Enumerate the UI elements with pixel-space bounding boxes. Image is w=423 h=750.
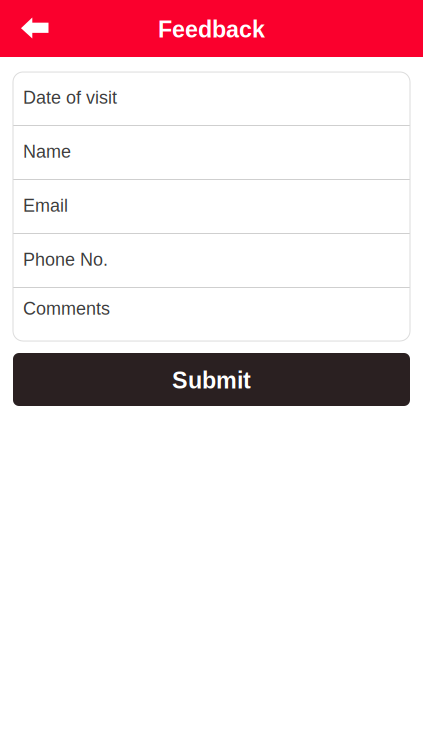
button[interactable]: Submit bbox=[13, 353, 410, 406]
button[interactable]: Comments bbox=[13, 288, 410, 341]
button[interactable]: Name bbox=[13, 126, 410, 180]
staticText: Date of visit bbox=[23, 87, 117, 107]
button[interactable]: Phone No. bbox=[13, 234, 410, 288]
staticText: Submit bbox=[172, 367, 251, 394]
staticText: Name bbox=[23, 141, 71, 161]
staticText: Feedback bbox=[158, 16, 265, 43]
staticText: Phone No. bbox=[23, 249, 108, 269]
staticText: Email bbox=[23, 195, 68, 215]
button[interactable]: Date of visit bbox=[13, 72, 410, 126]
button[interactable]: Email bbox=[13, 180, 410, 234]
staticText: Comments bbox=[23, 298, 110, 318]
button[interactable]: Back bbox=[0, 0, 63, 57]
